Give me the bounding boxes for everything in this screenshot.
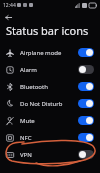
staticText: Status bar icons (6, 23, 100, 38)
staticText: Alarm (20, 66, 37, 74)
button[interactable]: Bluetooth (0, 78, 100, 95)
staticText: VPN (20, 151, 32, 159)
staticText: Bluetooth (20, 83, 48, 91)
button[interactable]: On (78, 48, 94, 57)
button[interactable]: On (78, 82, 94, 91)
button[interactable]: Back (2, 11, 14, 23)
button[interactable]: VPN (0, 146, 100, 163)
button[interactable]: Off (78, 150, 94, 159)
staticText: Do Not Disturb (20, 100, 63, 108)
button[interactable]: On (78, 133, 94, 142)
staticText: NFC (20, 134, 32, 142)
staticText: 12:44 (3, 2, 16, 9)
staticText: Mute (20, 117, 35, 125)
button[interactable]: Do Not Disturb (0, 95, 100, 112)
button[interactable]: On (78, 99, 94, 108)
button[interactable]: Alarm (0, 61, 100, 78)
button[interactable]: Off (78, 65, 94, 74)
button[interactable]: On (78, 116, 94, 125)
button[interactable]: Airplane mode (0, 44, 100, 61)
staticText: Airplane mode (20, 49, 62, 57)
button[interactable]: NFC (0, 129, 100, 146)
button[interactable]: Mute (0, 112, 100, 129)
